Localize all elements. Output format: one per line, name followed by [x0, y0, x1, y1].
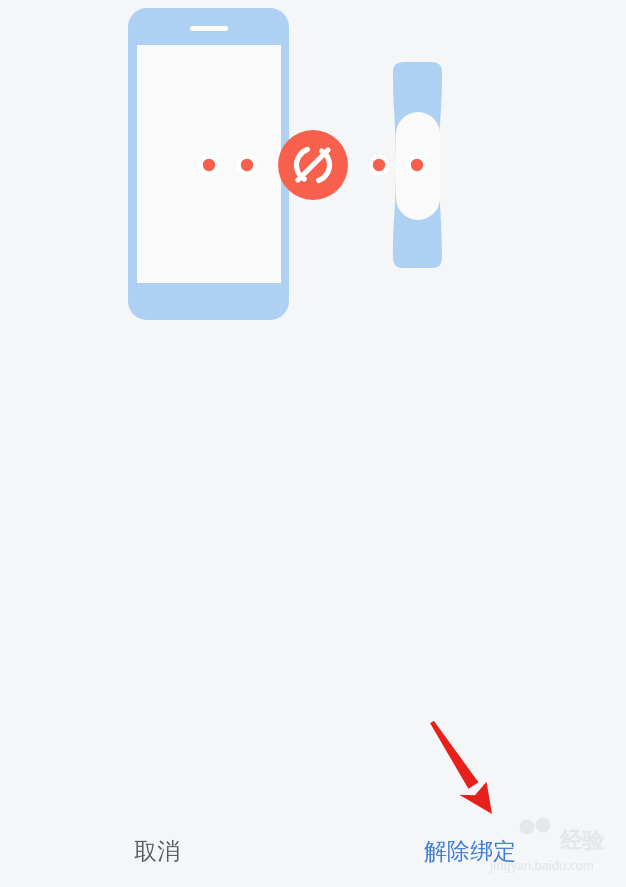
- button[interactable]: 解除绑定: [313, 815, 626, 887]
- staticText: 经验: [560, 827, 604, 855]
- staticText: 解除绑定: [424, 837, 516, 866]
- staticText: 取消: [134, 837, 180, 866]
- staticText: jingyan.baidu.com: [490, 857, 594, 873]
- button[interactable]: 取消: [0, 815, 313, 887]
